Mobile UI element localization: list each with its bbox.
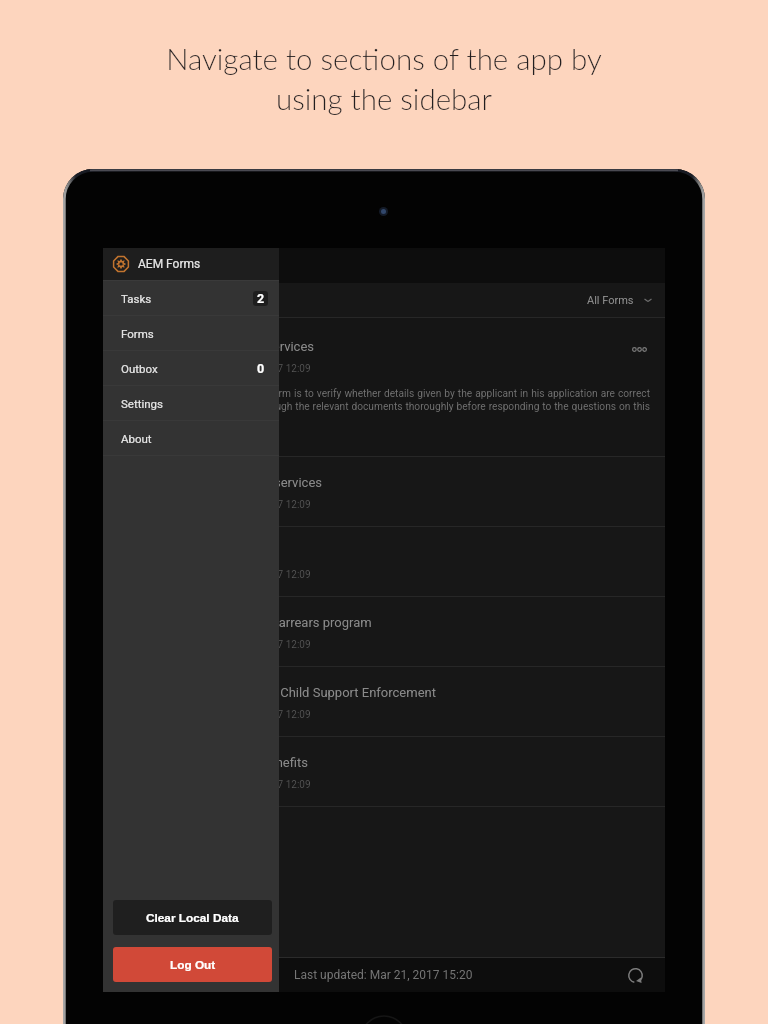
staticText: Mar 21, 2017 12:09 [225, 499, 311, 511]
button[interactable]: Claim benefits [103, 737, 665, 807]
button[interactable]: Settings [103, 386, 279, 420]
staticText: Tasks [121, 292, 152, 305]
staticText: Outbox [121, 362, 158, 375]
button[interactable]: More options [629, 339, 649, 359]
staticText: Clear Local Data [146, 911, 239, 924]
button[interactable]: Outbox [103, 351, 279, 385]
staticText: Navigate to sections of the app by using… [166, 41, 602, 116]
staticText: Mar 21, 2017 12:09 [225, 779, 311, 791]
button[interactable]: About [103, 421, 279, 455]
button[interactable]: All Forms [573, 283, 665, 317]
staticText: Apply for Child Support Enforcement [225, 685, 436, 700]
staticText: 2 [257, 291, 265, 306]
staticText: Claim benefits [225, 755, 308, 770]
button[interactable]: Clear Local Data [113, 900, 272, 935]
button[interactable]: Medical services [103, 457, 665, 527]
button[interactable]: Refresh [618, 958, 652, 992]
staticText: The purpose of this form is to verify wh… [177, 388, 650, 413]
staticText: Last updated: Mar 21, 2017 15:20 [294, 968, 473, 982]
button[interactable]: AEM Forms [103, 248, 279, 280]
staticText: About [121, 432, 152, 445]
staticText: Health services [225, 339, 315, 354]
staticText: 0 [257, 361, 265, 376]
staticText: Mar 21, 2017 12:09 [225, 639, 311, 651]
staticText: AEM Forms [138, 257, 201, 271]
staticText: Forms [121, 327, 154, 340]
button[interactable]: Mar 21, 2017 12:09 [103, 527, 665, 597]
staticText: Medical services [225, 475, 322, 490]
staticText: All Forms [587, 294, 634, 307]
staticText: Mar 21, 2017 12:09 [225, 569, 311, 581]
staticText: Settings [121, 397, 163, 410]
staticText: Maintain arrears program [225, 615, 372, 630]
button[interactable]: Log Out [113, 947, 272, 982]
staticText: Mar 21, 2017 12:09 [225, 363, 311, 375]
staticText: Mar 21, 2017 12:09 [225, 709, 311, 721]
button[interactable]: Apply for Child Support Enforcement [103, 667, 665, 737]
button[interactable]: Maintain arrears program [103, 597, 665, 667]
staticText: Log Out [170, 958, 216, 971]
button[interactable]: Health services [103, 318, 665, 457]
button[interactable]: Tasks [103, 281, 279, 315]
button[interactable]: Forms [103, 316, 279, 350]
